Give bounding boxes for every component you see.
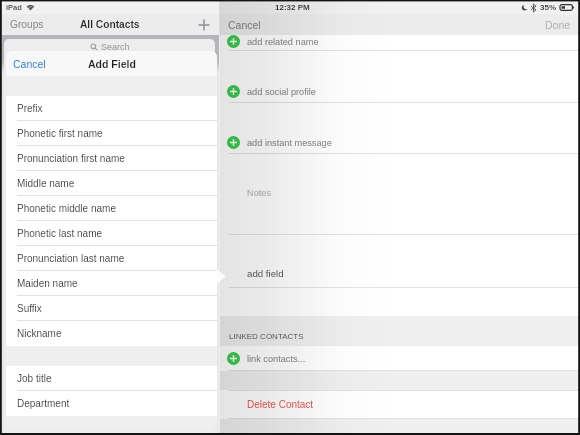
staticText: 12:32 PM xyxy=(275,3,310,12)
staticText: add field xyxy=(247,268,284,279)
button[interactable]: Prefix xyxy=(6,96,217,121)
button[interactable]: Done xyxy=(545,19,571,31)
button[interactable]: Groups xyxy=(10,19,44,30)
button[interactable]: Suffix xyxy=(6,296,217,321)
button[interactable]: Delete Contact xyxy=(0,391,580,418)
staticText: Phonetic first name xyxy=(17,128,103,139)
button[interactable]: Maiden name xyxy=(6,271,217,296)
staticText: Phonetic middle name xyxy=(17,203,116,214)
button[interactable]: Cancel xyxy=(13,58,46,70)
staticText: Pronunciation last name xyxy=(17,253,125,264)
staticText: All Contacts xyxy=(80,19,140,30)
button[interactable]: Phonetic middle name xyxy=(6,196,217,221)
staticText: Suffix xyxy=(17,303,42,314)
staticText: add instant message xyxy=(247,138,332,148)
staticText: Phonetic last name xyxy=(17,228,103,239)
button[interactable]: link contacts... xyxy=(0,346,580,370)
staticText: LINKED CONTACTS xyxy=(229,332,304,341)
button[interactable]: Middle name xyxy=(6,171,217,196)
staticText: add social profile xyxy=(247,87,316,97)
staticText: Department xyxy=(17,398,70,409)
staticText: Middle name xyxy=(17,178,75,189)
button[interactable]: Nickname xyxy=(6,321,217,346)
button[interactable]: Job title xyxy=(6,366,217,391)
button[interactable]: Phonetic first name xyxy=(6,121,217,146)
staticText: Job title xyxy=(17,373,52,384)
staticText: 35% xyxy=(540,3,557,12)
staticText: link contacts... xyxy=(247,354,306,364)
button[interactable]: Pronunciation last name xyxy=(6,246,217,271)
button[interactable]: add field xyxy=(0,235,580,287)
button[interactable]: add related name xyxy=(0,33,580,50)
button[interactable]: Department xyxy=(6,391,217,416)
staticText: Delete Contact xyxy=(247,399,314,410)
staticText: Notes xyxy=(247,188,272,198)
staticText: Search xyxy=(101,42,130,52)
button[interactable]: Pronunciation first name xyxy=(6,146,217,171)
staticText: iPad xyxy=(6,3,22,11)
staticText: Prefix xyxy=(17,103,43,114)
staticText: Maiden name xyxy=(17,278,78,289)
staticText: add related name xyxy=(247,37,319,47)
button[interactable]: Phonetic last name xyxy=(6,221,217,246)
button[interactable]: Cancel xyxy=(228,19,261,31)
staticText: Pronunciation first name xyxy=(17,153,125,164)
staticText: Add Field xyxy=(88,58,136,70)
staticText: Nickname xyxy=(17,328,62,339)
button[interactable]: Add contact xyxy=(195,16,213,34)
button[interactable]: add instant message xyxy=(0,132,580,153)
button[interactable]: add social profile xyxy=(0,81,580,102)
